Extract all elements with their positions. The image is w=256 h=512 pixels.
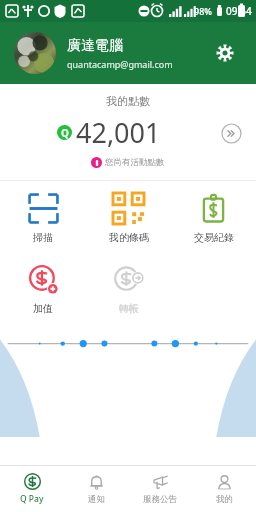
staticText: 我的條碼 — [109, 231, 149, 244]
staticText: Q — [61, 126, 69, 140]
staticText: 廣達電腦 — [67, 37, 123, 55]
button[interactable]: 廣達電腦 — [0, 22, 256, 84]
button[interactable]: 交易紀錄 — [171, 189, 256, 248]
staticText: 09:54 — [226, 4, 252, 18]
staticText: 通知 — [88, 494, 105, 505]
staticText: 您尚有活動點數 — [105, 157, 165, 168]
staticText: 我的 — [216, 494, 233, 505]
staticText: Q Pay — [20, 493, 44, 505]
button[interactable]: 我的條碼 — [86, 189, 171, 248]
button[interactable]: 我的 — [192, 466, 256, 512]
button[interactable]: 掃描 — [0, 189, 86, 248]
staticText: 98% — [194, 5, 212, 17]
button[interactable]: 服務公告 — [128, 466, 192, 512]
button[interactable]: 加值 — [0, 260, 86, 319]
button[interactable]: 通知 — [64, 466, 128, 512]
staticText: 服務公告 — [143, 494, 177, 505]
staticText: 我的點數 — [106, 94, 150, 108]
staticText: 轉帳 — [119, 302, 139, 315]
staticText: 42,001 — [76, 114, 161, 151]
button[interactable]: Settings — [208, 36, 242, 70]
staticText: 交易紀錄 — [194, 231, 234, 244]
button[interactable]: 轉帳 — [86, 260, 171, 319]
button[interactable]: Q Pay — [0, 466, 64, 512]
button[interactable]: More points detail — [218, 120, 244, 146]
staticText: quantacamp@gmail.com — [67, 58, 173, 70]
staticText: 掃描 — [33, 231, 53, 244]
staticText: 加值 — [33, 302, 53, 315]
